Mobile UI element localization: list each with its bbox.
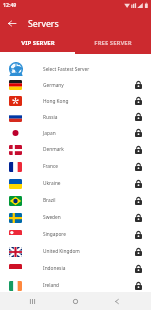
button[interactable]: Hong Kong <box>0 93 151 109</box>
staticText: Select Fastest Server <box>43 66 126 73</box>
staticText: VIP SERVER <box>21 39 55 47</box>
staticText: 12:49 <box>3 1 17 8</box>
button[interactable]: Brazil <box>0 192 151 209</box>
button[interactable]: Singapore <box>0 226 151 243</box>
button[interactable]: Select Fastest Server <box>0 61 151 77</box>
staticText: Germany <box>43 82 126 89</box>
staticText: United Kingdom <box>43 248 126 255</box>
staticText: Singapore <box>43 231 126 238</box>
staticText: Brazil <box>43 197 126 204</box>
button[interactable]: VIP SERVER <box>0 33 75 52</box>
button[interactable]: France <box>0 158 151 175</box>
staticText: Hong Kong <box>43 98 126 105</box>
button[interactable]: United Kingdom <box>0 243 151 260</box>
button[interactable]: Recent apps <box>22 292 42 310</box>
staticText: Indonesia <box>43 265 126 272</box>
button[interactable]: Denmark <box>0 141 151 158</box>
staticText: FREE SERVER <box>94 39 132 47</box>
button[interactable]: Sweden <box>0 209 151 226</box>
staticText: Denmark <box>43 146 126 153</box>
button[interactable]: Indonesia <box>0 260 151 277</box>
staticText: France <box>43 163 126 170</box>
staticText: Ireland <box>43 282 126 289</box>
button[interactable]: Ireland <box>0 277 151 294</box>
button[interactable]: Ukraine <box>0 175 151 192</box>
staticText: Japan <box>43 130 126 137</box>
button[interactable]: Russia <box>0 109 151 125</box>
staticText: Ukraine <box>43 180 126 187</box>
button[interactable]: Back <box>107 292 127 310</box>
button[interactable]: Back <box>0 11 22 33</box>
staticText: Russia <box>43 114 126 121</box>
button[interactable]: Japan <box>0 125 151 141</box>
staticText: Servers <box>28 18 59 30</box>
button[interactable]: FREE SERVER <box>75 33 151 52</box>
button[interactable]: Germany <box>0 77 151 93</box>
staticText: Sweden <box>43 214 126 221</box>
button[interactable]: Home <box>65 292 85 310</box>
